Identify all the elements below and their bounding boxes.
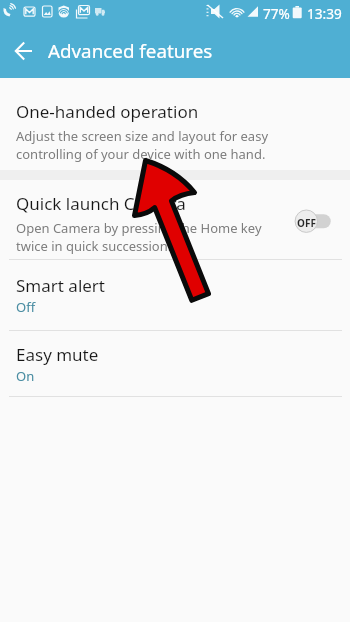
button[interactable]: Back — [0, 27, 48, 75]
button[interactable]: One-handed operation — [0, 78, 350, 170]
staticText: OFF — [297, 216, 316, 230]
button[interactable]: Quick launch Camera — [0, 180, 350, 259]
staticText: Advanced features — [48, 38, 213, 64]
button[interactable]: Quick launch Camera switch, off — [295, 210, 331, 234]
button[interactable]: Easy mute — [0, 331, 350, 396]
staticText: Easy mute — [16, 343, 99, 366]
staticText: Off — [16, 298, 36, 316]
staticText: On — [16, 367, 35, 385]
staticText: Smart alert — [16, 274, 106, 297]
staticText: Open Camera by pressing the Home key twi… — [16, 219, 262, 255]
staticText: 13:39 — [307, 4, 342, 23]
staticText: 77% — [263, 4, 290, 23]
button[interactable]: Smart alert — [0, 260, 350, 330]
staticText: Adjust the screen size and layout for ea… — [16, 127, 269, 163]
staticText: Quick launch Camera — [16, 192, 186, 215]
staticText: One-handed operation — [16, 100, 199, 123]
